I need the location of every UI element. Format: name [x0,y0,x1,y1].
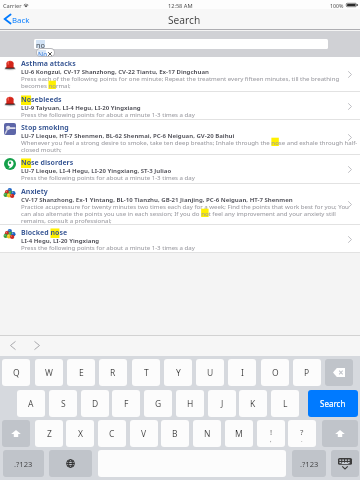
staticText: H [187,398,194,410]
staticText: M [235,428,243,440]
staticText: becomes normal; [21,81,71,89]
button[interactable]: Stop smoking [0,120,360,155]
button[interactable]: G [144,390,172,417]
button[interactable]: Blocked nose [0,225,360,253]
button[interactable]: B [161,420,189,447]
staticText: J [221,398,224,410]
staticText: Press the following points for about a m… [21,173,195,181]
button[interactable]: Change keyboard [49,450,92,477]
button[interactable]: E [67,359,95,386]
staticText: LU-7 Lieque, HT-7 Shenmen, BL-62 Shenmai… [21,132,235,140]
staticText: 100% [330,2,344,9]
button[interactable]: .?123 [292,450,326,477]
button[interactable]: V [130,420,158,447]
staticText: O [272,367,279,379]
button[interactable]: D [81,390,109,417]
staticText: X [78,428,83,440]
staticText: .?123 [14,459,33,469]
staticText: No [38,50,48,56]
staticText: U [207,367,214,379]
staticText: B [172,428,178,440]
button[interactable]: A [17,390,45,417]
button[interactable]: P [293,359,321,386]
staticText: LI-4 Hegu, LI-20 Yingxiang [21,237,100,245]
staticText: L [283,398,288,410]
staticText: Press the following points for about a m… [21,243,195,251]
staticText: Press each of the following points for o… [21,74,340,82]
button[interactable]: Previous field [4,338,22,353]
staticText: Z [47,428,52,440]
button[interactable]: T [132,359,160,386]
button[interactable]: Shift [322,420,358,447]
staticText: T [144,367,149,379]
button[interactable]: U [196,359,224,386]
staticText: CV-17 Shanzhong, Ex-1 Yintang, BL-10 Tia… [21,196,293,204]
staticText: Nose disorders [21,158,74,168]
button[interactable]: L [271,390,299,417]
button[interactable]: O [261,359,289,386]
staticText: Blocked nose [21,228,68,238]
staticText: I [241,367,244,379]
staticText: K [250,398,256,410]
button[interactable]: H [176,390,204,417]
button[interactable]: Z [35,420,63,447]
staticText: F [124,398,129,410]
button[interactable]: no [34,39,328,49]
staticText: Press the following points for about a m… [21,110,195,118]
button[interactable]: Shift [2,420,30,447]
button[interactable]: Backspace [325,359,353,386]
staticText: Asthma attacks [21,59,76,69]
staticText: Search [168,13,201,27]
staticText: can also alternate the points you use in… [21,209,336,217]
button[interactable]: No [36,48,55,57]
staticText: V [141,428,147,440]
staticText: S [61,398,66,410]
staticText: G [155,398,162,410]
staticText: LU-9 Taiyuan, LI-4 Hegu, LI-20 Yingxiang [21,104,141,112]
button[interactable]: Q [2,359,30,386]
staticText: Search [320,398,346,409]
staticText: Whenever you feel a strong desire to smo… [21,138,358,146]
staticText: R [110,367,116,379]
button[interactable]: R [99,359,127,386]
staticText: Y [176,367,181,379]
staticText: Carrier [3,2,22,10]
staticText: W [45,367,53,379]
button[interactable]: J [208,390,236,417]
button[interactable]: N [193,420,221,447]
button[interactable]: Next field [28,338,46,353]
button[interactable]: S [49,390,77,417]
staticText: .?123 [300,459,319,469]
button[interactable]: Back [0,11,34,28]
button[interactable]: Search [308,390,358,417]
button[interactable]: Nosebleeds [0,92,360,120]
button[interactable]: X [66,420,94,447]
button[interactable]: Asthma attacks [0,56,360,92]
staticText: Back [12,15,30,26]
button[interactable]: W [35,359,63,386]
staticText: C [109,428,115,440]
button[interactable]: Anxiety [0,184,360,225]
staticText: P [304,367,310,379]
staticText: 12:58 AM [168,2,193,10]
button[interactable]: I [228,359,256,386]
staticText: LU-7 Lieque, LI-4 Hegu, LI-20 Yingxiang,… [21,167,172,175]
staticText: Practice acupressure for twenty minutes … [21,202,349,210]
button[interactable]: .?123 [3,450,44,477]
button[interactable]: F [112,390,140,417]
button[interactable]: Hide keyboard [331,450,359,477]
staticText: A [28,398,34,410]
button[interactable]: Nose disorders [0,155,360,184]
staticText: closed mouth; [21,145,62,153]
button[interactable]: ? [288,420,316,447]
button[interactable]: C [98,420,126,447]
button[interactable]: M [225,420,253,447]
staticText: , [270,436,272,444]
button[interactable]: ! [257,420,285,447]
button[interactable]: Y [164,359,192,386]
staticText: Nosebleeds [21,95,62,105]
staticText: D [92,398,99,410]
staticText: LU-6 Kongzui, CV-17 Shanzhong, CV-22 Tia… [21,68,209,76]
button[interactable]: K [239,390,267,417]
